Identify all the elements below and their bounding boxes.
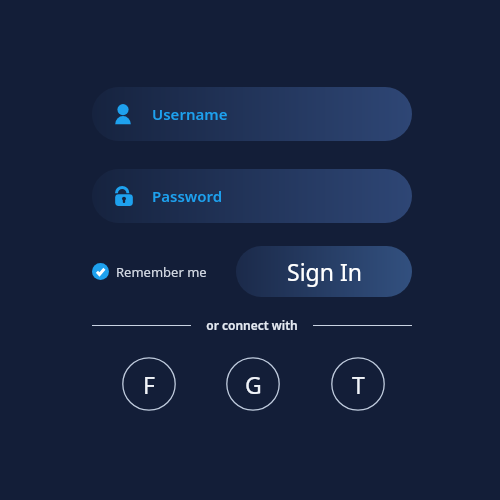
button[interactable]: Sign In bbox=[236, 246, 412, 297]
button[interactable]: Sign in with G bbox=[226, 357, 280, 411]
staticText: T bbox=[352, 369, 365, 400]
button[interactable]: Password bbox=[92, 169, 412, 223]
button[interactable]: Remember me bbox=[92, 258, 207, 285]
staticText: Password bbox=[152, 186, 223, 206]
staticText: F bbox=[143, 369, 155, 400]
staticText: Remember me bbox=[116, 263, 207, 281]
staticText: Username bbox=[152, 104, 228, 124]
button[interactable]: Username bbox=[92, 87, 412, 141]
button[interactable]: Sign in with T bbox=[331, 357, 385, 411]
button[interactable]: Sign in with F bbox=[122, 357, 176, 411]
staticText: Sign In bbox=[287, 256, 362, 287]
staticText: or connect with bbox=[206, 317, 298, 333]
staticText: G bbox=[245, 369, 262, 400]
